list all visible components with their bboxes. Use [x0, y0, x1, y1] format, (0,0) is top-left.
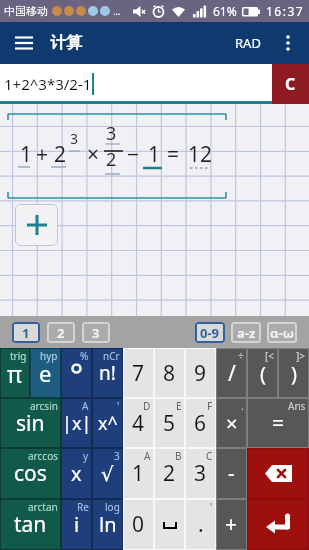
button[interactable] — [247, 448, 309, 499]
staticText: y — [83, 449, 89, 463]
button[interactable]: D — [123, 398, 154, 448]
staticText: 0-9 — [200, 324, 220, 342]
staticText: × — [87, 140, 100, 169]
staticText: trig — [10, 349, 27, 363]
staticText: 7 — [132, 359, 145, 388]
staticText: 16:37 — [266, 3, 305, 19]
staticText: - — [228, 459, 235, 488]
staticText: ]> — [296, 349, 306, 363]
button[interactable]: arcsin — [0, 398, 61, 448]
button[interactable]: arccos — [0, 448, 61, 499]
button[interactable]: ' — [185, 499, 216, 550]
staticText: E — [176, 399, 182, 413]
staticText: 12 — [188, 140, 213, 169]
button[interactable]: nCr — [92, 348, 123, 398]
staticText: [< — [265, 349, 275, 363]
button[interactable]: ]> — [278, 348, 309, 398]
staticText: B — [175, 449, 182, 463]
button[interactable]: 1 — [12, 322, 40, 343]
button[interactable]: 3 — [92, 448, 123, 499]
staticText: sin — [16, 409, 45, 438]
staticText: hyp — [40, 349, 58, 363]
button[interactable]: A — [61, 398, 92, 448]
staticText: ' — [117, 399, 120, 413]
staticText: RAD — [235, 34, 261, 52]
staticText: × — [226, 410, 238, 437]
staticText: |x| — [62, 411, 92, 436]
button[interactable] — [247, 499, 309, 550]
button[interactable]: y — [61, 448, 92, 499]
staticText: ÷ — [238, 349, 244, 363]
button[interactable]: % — [61, 348, 92, 398]
button[interactable]: . — [216, 398, 247, 448]
button[interactable]: ' — [92, 398, 123, 448]
button[interactable]: A — [123, 448, 154, 499]
button[interactable]: 8 — [154, 348, 185, 398]
button[interactable]: C — [185, 448, 216, 499]
staticText: e — [39, 358, 52, 388]
staticText: ln — [99, 511, 117, 538]
button[interactable] — [154, 499, 185, 550]
staticText: A — [82, 399, 89, 413]
staticText: + — [36, 140, 49, 169]
button[interactable]: 0-9 — [195, 322, 225, 343]
staticText: 1+2^3*3/2-1 — [4, 74, 92, 94]
staticText: ' — [210, 500, 213, 514]
staticText: 9 — [194, 359, 207, 388]
staticText: 中国移动 — [4, 4, 48, 18]
staticText: i — [74, 511, 80, 538]
staticText: x^ — [98, 411, 118, 436]
button[interactable]: 0 — [123, 499, 154, 550]
staticText: . — [241, 399, 244, 413]
button[interactable]: hyp — [30, 348, 61, 398]
staticText: = — [272, 409, 285, 438]
staticText: tan — [14, 510, 47, 539]
staticText: arccos — [28, 449, 58, 463]
button[interactable] — [279, 34, 297, 52]
staticText: √ — [101, 462, 114, 485]
staticText: . — [198, 510, 204, 539]
staticText: % — [80, 349, 89, 363]
button[interactable]: - — [216, 448, 247, 499]
staticText: / — [228, 359, 236, 388]
button[interactable]: 2 — [47, 322, 75, 343]
staticText: 6 — [194, 409, 207, 438]
button[interactable]: E — [154, 398, 185, 448]
staticText: 1 — [22, 324, 30, 342]
button[interactable]: Ans — [247, 398, 309, 448]
button[interactable]: 7 — [123, 348, 154, 398]
staticText: − — [127, 140, 140, 169]
staticText: = — [167, 140, 180, 169]
button[interactable]: B — [154, 448, 185, 499]
button[interactable]: log — [92, 499, 123, 550]
button[interactable]: Re — [61, 499, 92, 550]
staticText: α-ω — [270, 324, 294, 342]
button[interactable]: α-ω — [267, 322, 297, 343]
button[interactable]: 3 — [82, 322, 110, 343]
staticText: 5 — [163, 409, 176, 438]
staticText: cos — [14, 459, 47, 488]
button[interactable]: F — [185, 398, 216, 448]
button[interactable]: [< — [247, 348, 278, 398]
button[interactable]: + — [216, 499, 247, 550]
button[interactable] — [15, 204, 58, 246]
staticText: log — [105, 500, 120, 514]
button[interactable]: C — [272, 64, 309, 104]
button[interactable]: ÷ — [216, 348, 247, 398]
button[interactable] — [12, 31, 36, 55]
staticText: 2 — [163, 459, 176, 488]
staticText: 61% — [213, 3, 237, 19]
staticText: nCr — [103, 349, 120, 363]
staticText: 2 — [57, 324, 65, 342]
staticText: ( — [260, 360, 266, 387]
button[interactable]: 9 — [185, 348, 216, 398]
button[interactable]: RAD — [231, 30, 265, 56]
staticText: 3 — [194, 459, 207, 488]
button[interactable]: a-z — [231, 322, 261, 343]
button[interactable]: arctan — [0, 499, 61, 550]
staticText: n! — [99, 360, 116, 386]
button[interactable]: trig — [0, 348, 30, 398]
staticText: C — [206, 449, 213, 463]
staticText: a-z — [237, 324, 256, 342]
staticText: 1 — [148, 140, 161, 169]
